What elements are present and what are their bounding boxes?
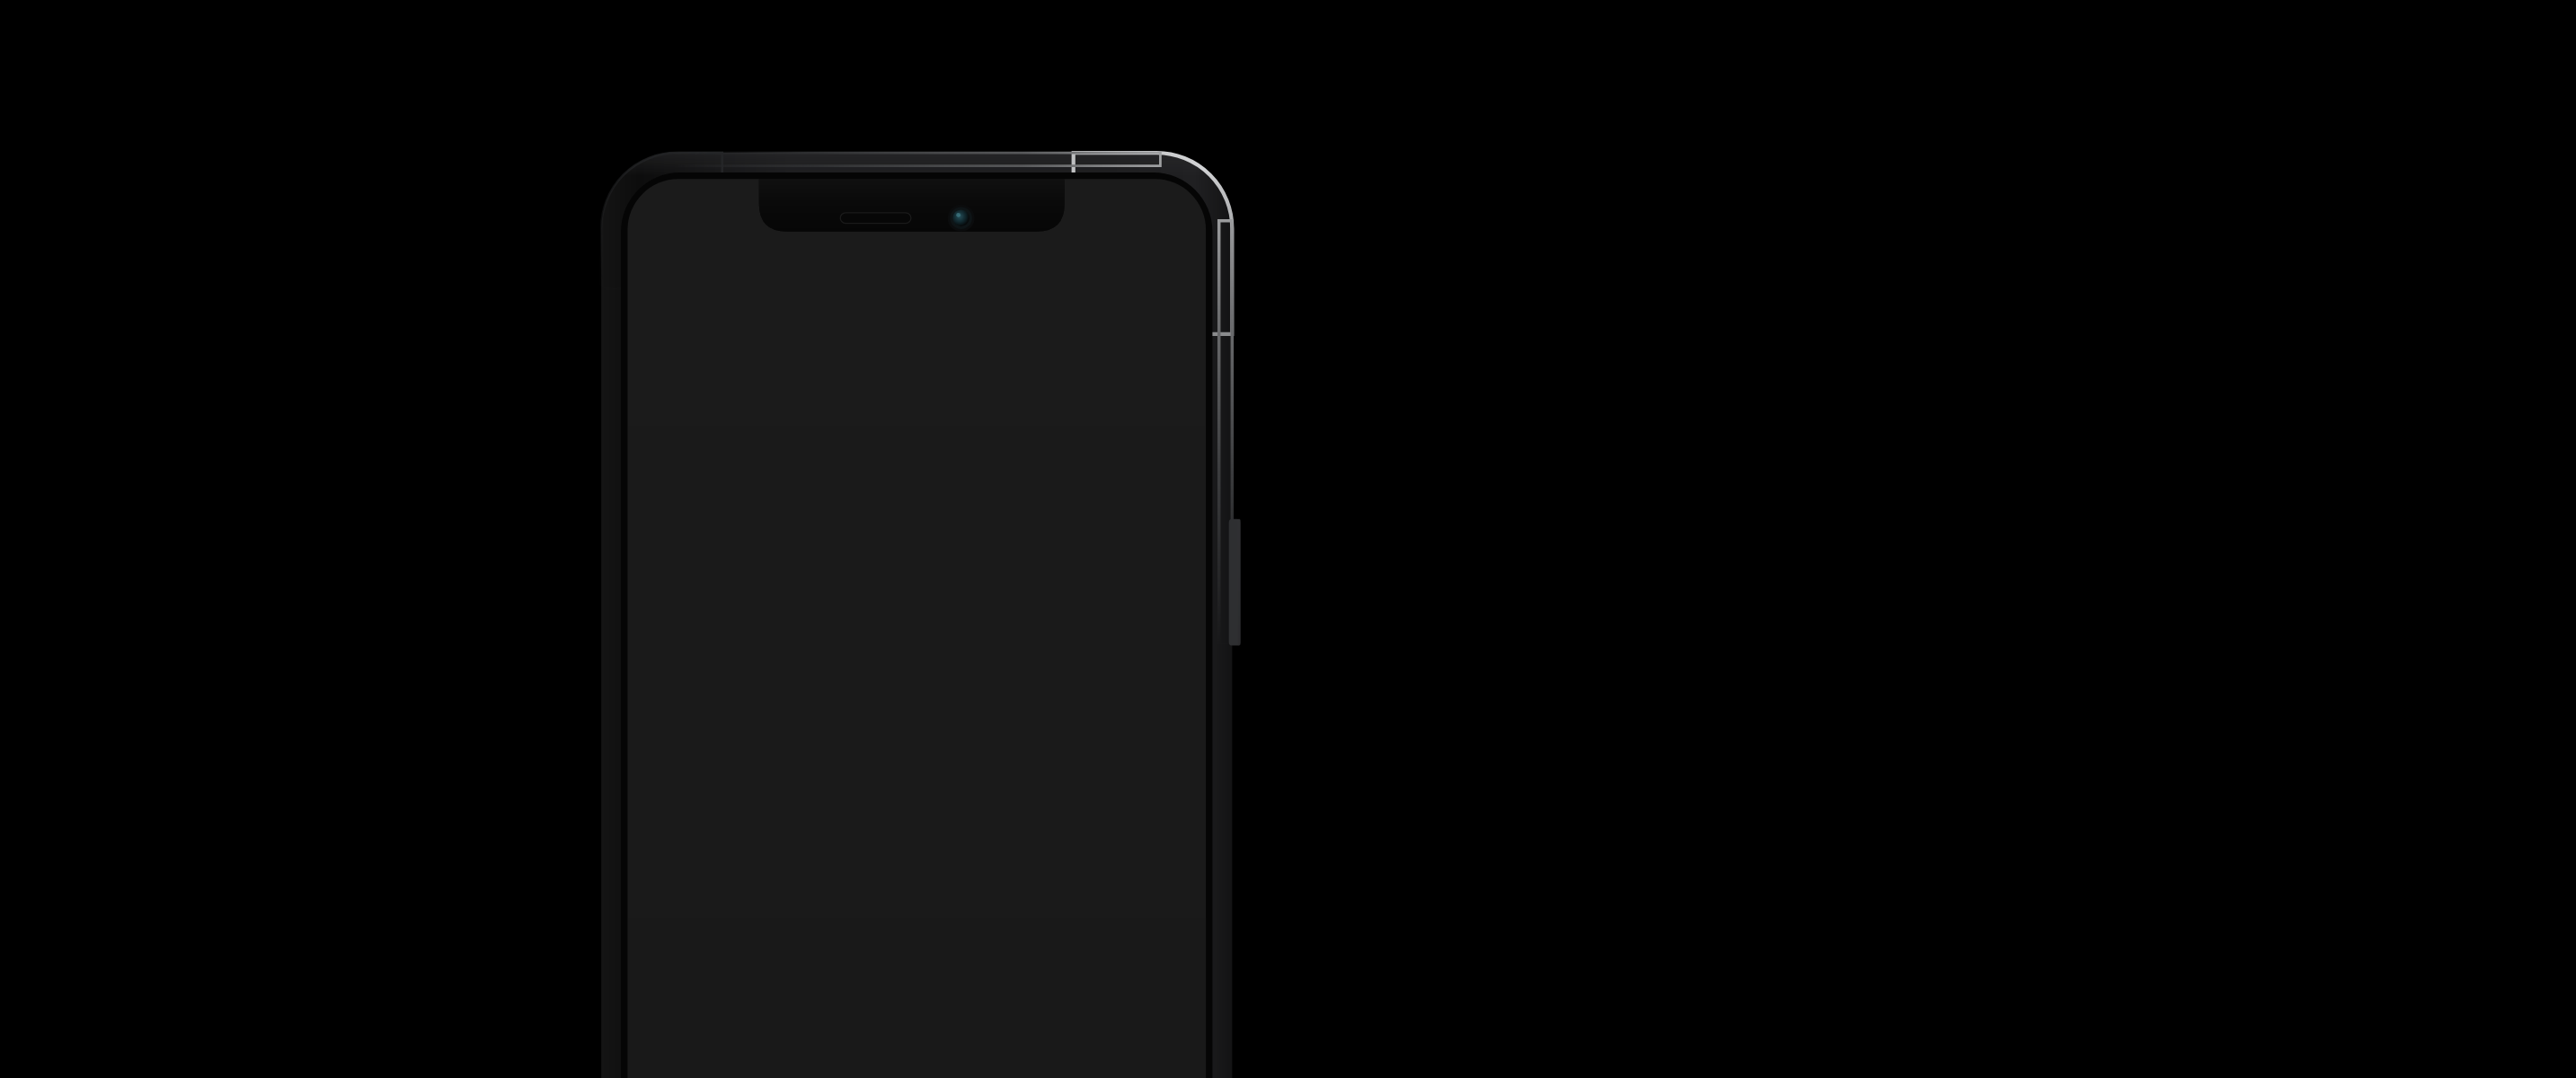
other: Phone device mockup with screen off [0, 0, 2576, 1078]
